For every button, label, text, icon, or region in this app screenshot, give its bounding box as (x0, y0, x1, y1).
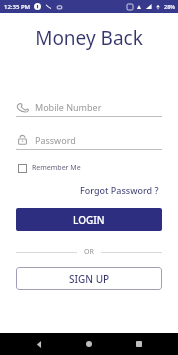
staticText: Mobile Number (35, 101, 102, 113)
button[interactable]: Back (28, 333, 50, 355)
button[interactable]: Mobile Number (16, 100, 162, 117)
button[interactable]: Password (16, 133, 162, 150)
button[interactable]: Recent apps (128, 333, 150, 355)
button[interactable]: Home (78, 333, 100, 355)
staticText: 12:35 PM (4, 3, 31, 11)
button[interactable]: Remember Me (16, 161, 83, 175)
staticText: Password (35, 134, 76, 146)
staticText: SIGN UP (69, 272, 110, 286)
staticText: Money Back (0, 25, 178, 51)
staticText: OR (84, 247, 94, 257)
staticText: Remember Me (32, 163, 81, 173)
staticText: 28% (164, 3, 175, 10)
button[interactable]: SIGN UP (16, 267, 162, 290)
staticText: LOGIN (73, 213, 105, 227)
button[interactable]: LOGIN (16, 208, 162, 231)
button[interactable]: Forgot Password ? (77, 181, 162, 199)
